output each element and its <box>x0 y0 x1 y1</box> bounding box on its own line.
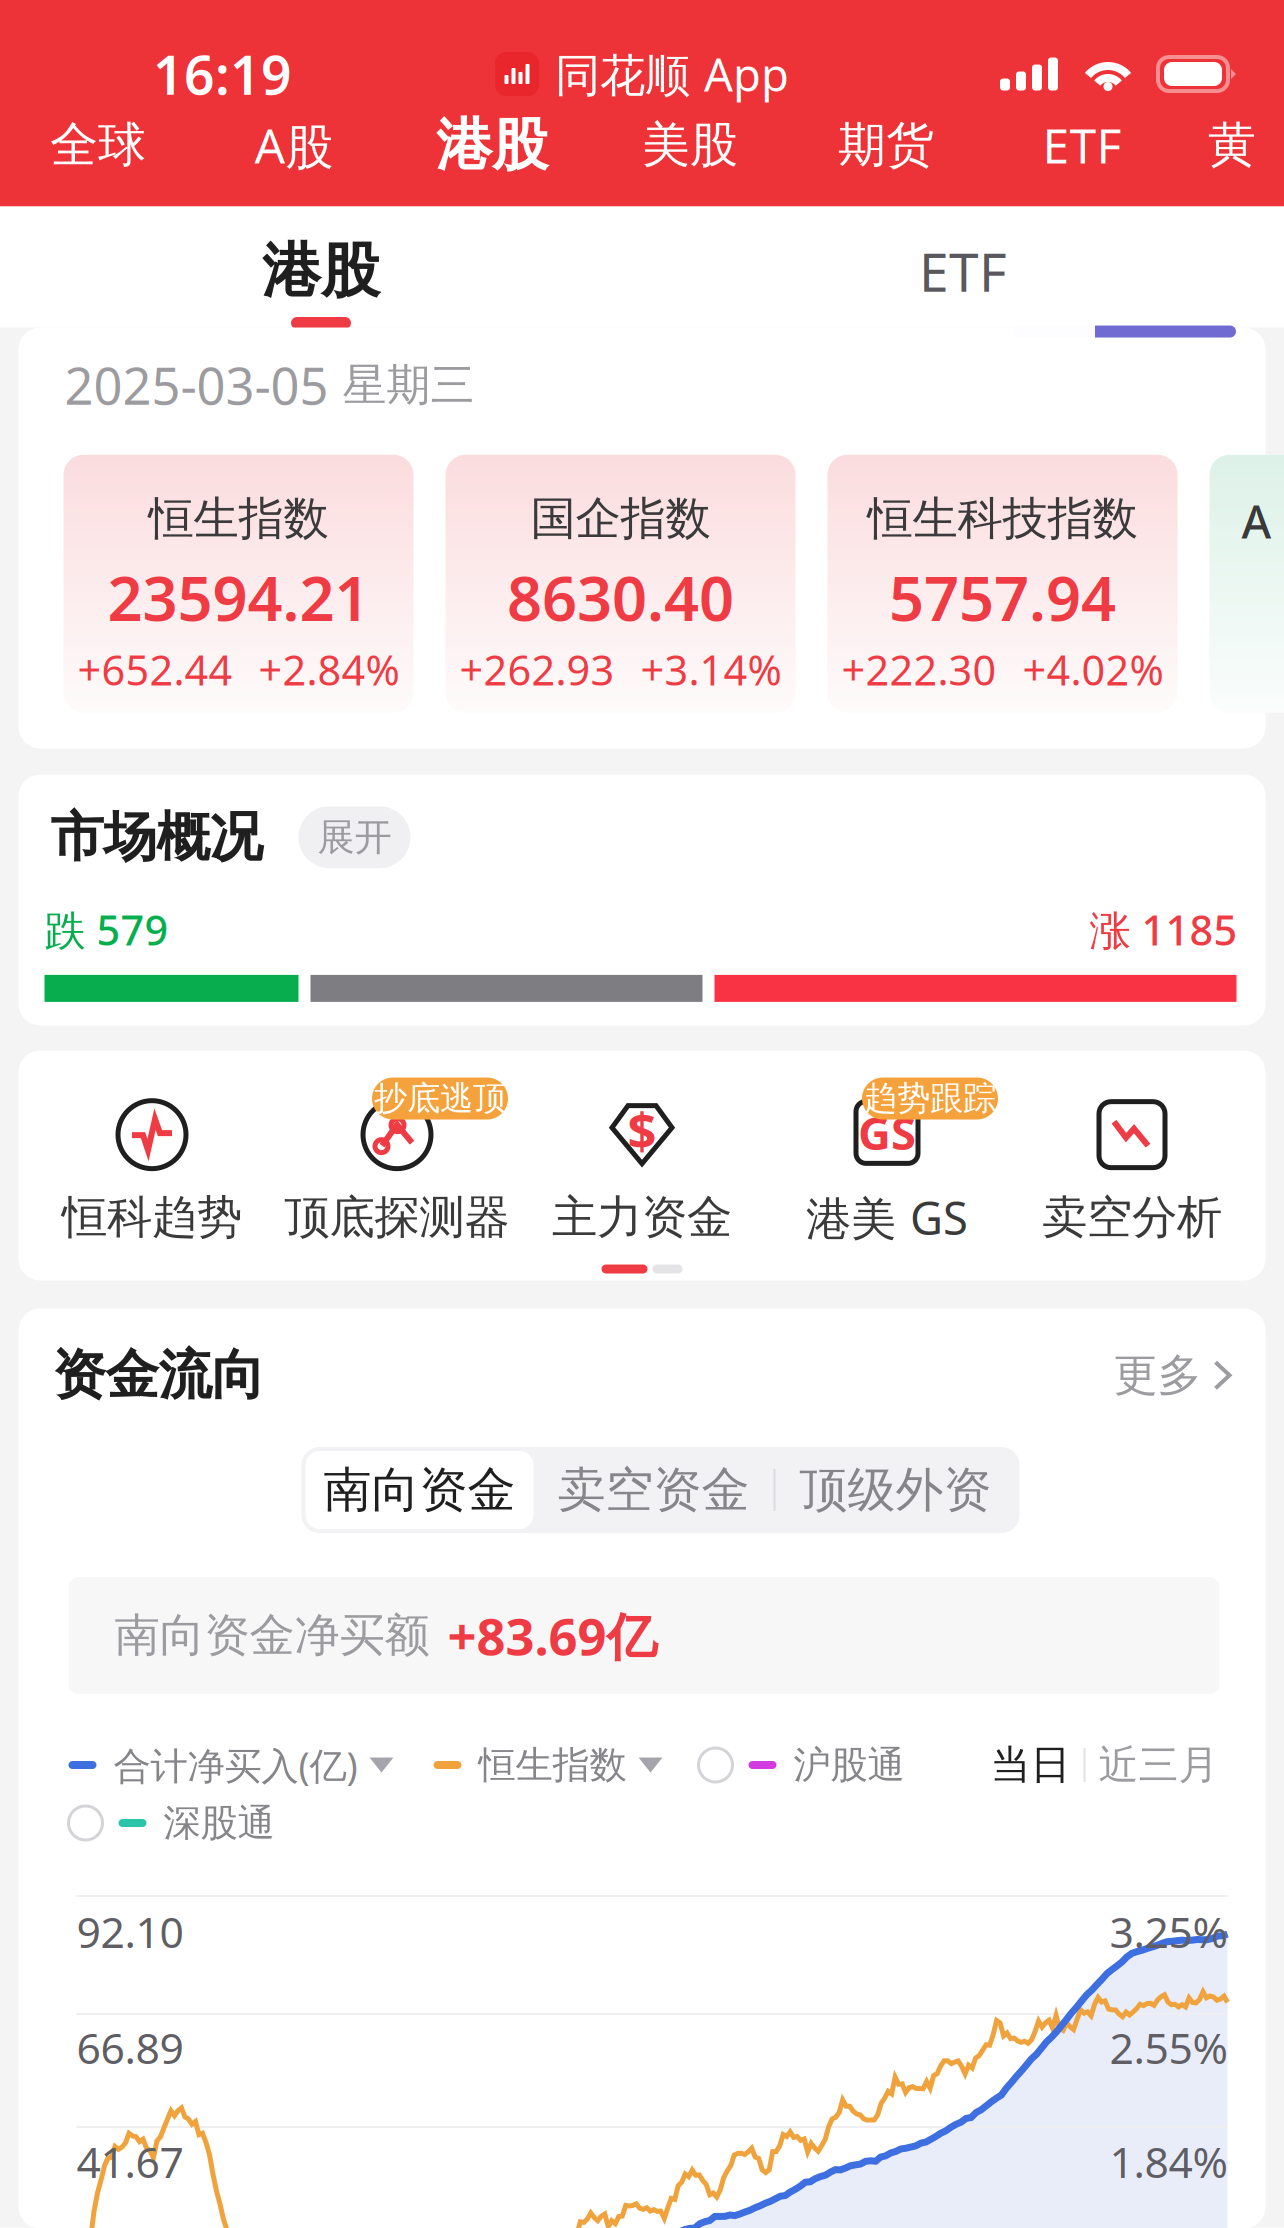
button[interactable]: 南向资金 <box>305 1451 533 1529</box>
button[interactable]: 国企指数 <box>445 455 795 713</box>
staticText: A <box>1241 491 1271 551</box>
staticText: +4.02% <box>1022 642 1163 697</box>
staticText: 66.89 <box>76 2019 183 2076</box>
staticText: 恒生科技指数 <box>867 491 1137 546</box>
button[interactable]: 美股 <box>592 95 788 195</box>
staticText: 港股 <box>436 111 548 179</box>
staticText: 2.55% <box>1109 2019 1227 2076</box>
staticText: +83.69亿 <box>447 1602 657 1669</box>
staticText: 资金流向 <box>52 1342 264 1408</box>
staticText: 展开 <box>317 814 391 860</box>
staticText: 5757.94 <box>889 556 1116 638</box>
staticText: +652.44 <box>77 642 232 697</box>
staticText: +2.84% <box>258 642 399 697</box>
staticText: ETF <box>919 236 1007 306</box>
staticText: 抄底逃顶 <box>374 1078 506 1119</box>
staticText: 92.10 <box>76 1903 183 1960</box>
button[interactable]: 恒科趋势 <box>29 1102 274 1242</box>
button[interactable]: ETF <box>831 206 1095 327</box>
button[interactable]: 港股 <box>189 206 453 327</box>
button[interactable]: A股 <box>196 95 392 195</box>
staticText: 期货 <box>838 115 934 174</box>
staticText: 趋势跟踪 <box>864 1078 996 1119</box>
staticText: 恒生指数 <box>478 1742 626 1788</box>
staticText: 黄 <box>1208 115 1256 174</box>
staticText: 美股 <box>642 115 738 174</box>
staticText: 跌 579 <box>44 902 168 957</box>
button[interactable]: 全球 <box>0 95 196 195</box>
staticText: 卖空资金 <box>557 1460 749 1519</box>
staticText: A股 <box>254 113 333 177</box>
staticText: 南向资金净买额 <box>114 1608 429 1663</box>
staticText: 星期三 <box>342 358 474 412</box>
button[interactable]: 恒生科技指数 <box>827 455 1177 713</box>
button[interactable]: 黄 <box>1180 95 1284 195</box>
staticText: 恒科趋势 <box>62 1190 242 1245</box>
staticText: 顶级外资 <box>799 1460 991 1519</box>
button[interactable]: 恒生指数 <box>63 455 413 713</box>
staticText: $ <box>627 1096 656 1163</box>
button[interactable]: 顶级外资 <box>775 1451 1015 1529</box>
staticText: 16:19 <box>153 39 292 109</box>
staticText: 当日 <box>990 1740 1070 1789</box>
staticText: 主力资金 <box>552 1190 732 1245</box>
staticText: +222.30 <box>841 642 996 697</box>
button[interactable]: GS <box>764 1102 1009 1242</box>
staticText: ETF <box>1042 113 1121 177</box>
staticText: 卖空分析 <box>1042 1190 1222 1245</box>
staticText: 近三月 <box>1098 1740 1218 1789</box>
button[interactable]: 顶底探测器 <box>274 1102 519 1242</box>
staticText: 国企指数 <box>530 491 710 546</box>
staticText: 南向资金 <box>323 1460 515 1519</box>
staticText: 恒生指数 <box>148 491 328 546</box>
button[interactable]: 卖空分析 <box>1009 1102 1254 1242</box>
staticText: 同花顺 App <box>555 44 789 104</box>
button[interactable]: $ <box>519 1102 764 1242</box>
staticText: 1.84% <box>1109 2133 1227 2190</box>
button[interactable]: 期货 <box>788 95 984 195</box>
button[interactable]: 更多 <box>1113 1348 1231 1402</box>
staticText: 8630.40 <box>507 556 734 638</box>
button[interactable]: ETF <box>984 95 1180 195</box>
staticText: 3.25% <box>1109 1903 1227 1960</box>
staticText: 合计净买入(亿) <box>113 1740 357 1790</box>
staticText: 深股通 <box>163 1800 274 1846</box>
button[interactable]: 港股 <box>392 95 592 195</box>
staticText: 市场概况 <box>50 804 262 870</box>
staticText: 涨 1185 <box>1089 902 1237 957</box>
staticText: 港股 <box>262 235 380 307</box>
staticText: +262.93 <box>459 642 614 697</box>
staticText: 23594.21 <box>107 556 369 638</box>
staticText: 全球 <box>50 115 146 174</box>
staticText: GS <box>858 1102 916 1162</box>
staticText: 2025-03-05 <box>64 351 328 419</box>
staticText: 顶底探测器 <box>284 1190 509 1245</box>
staticText: 41.67 <box>76 2133 183 2190</box>
staticText: 港美 GS <box>806 1187 968 1248</box>
button[interactable]: 展开 <box>298 806 410 868</box>
staticText: 沪股通 <box>793 1742 904 1788</box>
staticText: 更多 <box>1113 1348 1201 1402</box>
button[interactable]: 卖空资金 <box>533 1451 773 1529</box>
staticText: +3.14% <box>640 642 781 697</box>
